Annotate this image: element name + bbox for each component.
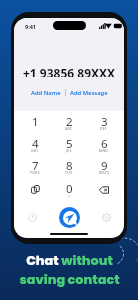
button[interactable]: 9: [90, 156, 118, 178]
button[interactable]: Add Name: [27, 87, 65, 98]
staticText: 3: [101, 114, 108, 130]
staticText: TUV: [65, 170, 73, 175]
button[interactable]: Recent calls: [22, 207, 42, 227]
staticText: PQRS: [30, 170, 40, 175]
staticText: MNO: [99, 148, 109, 153]
button[interactable]: 1: [21, 112, 49, 134]
button[interactable]: Paste: [21, 178, 49, 201]
staticText: 9:41: [25, 23, 36, 30]
button[interactable]: 8: [55, 156, 83, 178]
button[interactable]: Send message: [59, 207, 80, 228]
staticText: WXYZ: [99, 170, 110, 175]
staticText: 7: [32, 158, 39, 174]
button[interactable]: Settings: [96, 207, 116, 227]
button[interactable]: Backspace: [90, 178, 118, 201]
staticText: 1: [32, 114, 39, 130]
button[interactable]: Add Message: [66, 87, 112, 98]
staticText: 2: [66, 114, 73, 130]
button[interactable]: 2: [55, 112, 83, 134]
staticText: DEF: [100, 126, 108, 131]
staticText: +1 93856 89XXX: [23, 65, 116, 77]
button[interactable]: 3: [90, 112, 118, 134]
button[interactable]: 6: [90, 134, 118, 156]
staticText: +: [68, 193, 71, 198]
staticText: JKL: [66, 148, 72, 153]
button[interactable]: 0: [55, 179, 83, 201]
staticText: Add Name: [31, 89, 61, 96]
button[interactable]: 7: [21, 156, 49, 178]
staticText: Add Message: [70, 89, 108, 96]
staticText: 5: [66, 136, 73, 152]
staticText: 6: [101, 136, 108, 152]
staticText: saving contact: [19, 271, 120, 289]
staticText: ABC: [65, 126, 73, 131]
button[interactable]: 4: [21, 134, 49, 156]
button[interactable]: 5: [55, 134, 83, 156]
staticText: 0: [66, 181, 73, 197]
staticText: Chat without: [26, 252, 113, 270]
staticText: 8: [66, 158, 73, 174]
staticText: 4: [32, 136, 39, 152]
staticText: 9: [101, 158, 108, 174]
staticText: GHI: [31, 148, 39, 153]
